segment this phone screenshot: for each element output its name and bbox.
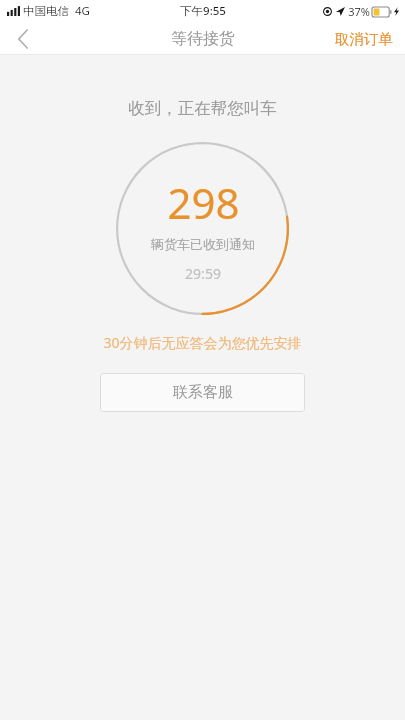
staticText: 298 [167, 174, 240, 231]
staticText: 收到，正在帮您叫车 [128, 98, 277, 119]
staticText: 30分钟后无应答会为您优先安排 [103, 333, 302, 352]
staticText: 联系客服 [173, 383, 233, 402]
staticText: 取消订单 [335, 30, 393, 48]
button[interactable]: 取消订单 [323, 22, 405, 55]
staticText: 辆货车已收到通知 [151, 236, 255, 252]
staticText: 等待接货 [171, 29, 235, 49]
button[interactable]: 联系客服 [100, 373, 305, 412]
staticText: 中国电信 [23, 4, 69, 18]
staticText: 37% [348, 4, 370, 19]
staticText: 下午9:55 [180, 3, 226, 19]
staticText: 4G [75, 3, 90, 19]
button[interactable]: Back [0, 22, 46, 55]
staticText: 29:59 [185, 264, 221, 283]
